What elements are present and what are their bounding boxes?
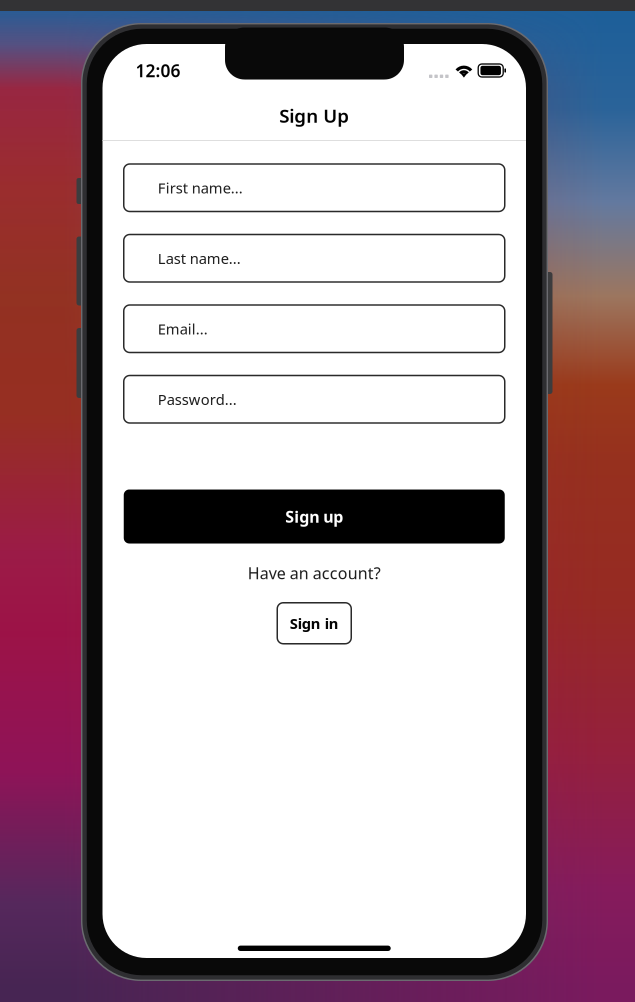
staticText: Sign Up <box>279 103 349 128</box>
staticText: Sign up <box>285 506 343 527</box>
staticText: Email... <box>158 319 208 338</box>
staticText: Have an account? <box>248 562 381 584</box>
staticText: Sign in <box>290 613 339 633</box>
button[interactable]: Sign up <box>124 489 505 543</box>
staticText: Last name... <box>158 248 241 268</box>
staticText: 12:06 <box>135 59 180 82</box>
button[interactable]: Last name... <box>124 234 505 282</box>
staticText: Password... <box>158 389 237 409</box>
button[interactable]: Sign in <box>277 603 351 644</box>
button[interactable]: Email... <box>124 305 505 352</box>
button[interactable]: First name... <box>124 164 505 211</box>
staticText: First name... <box>158 178 243 197</box>
button[interactable]: Password... <box>124 375 505 423</box>
